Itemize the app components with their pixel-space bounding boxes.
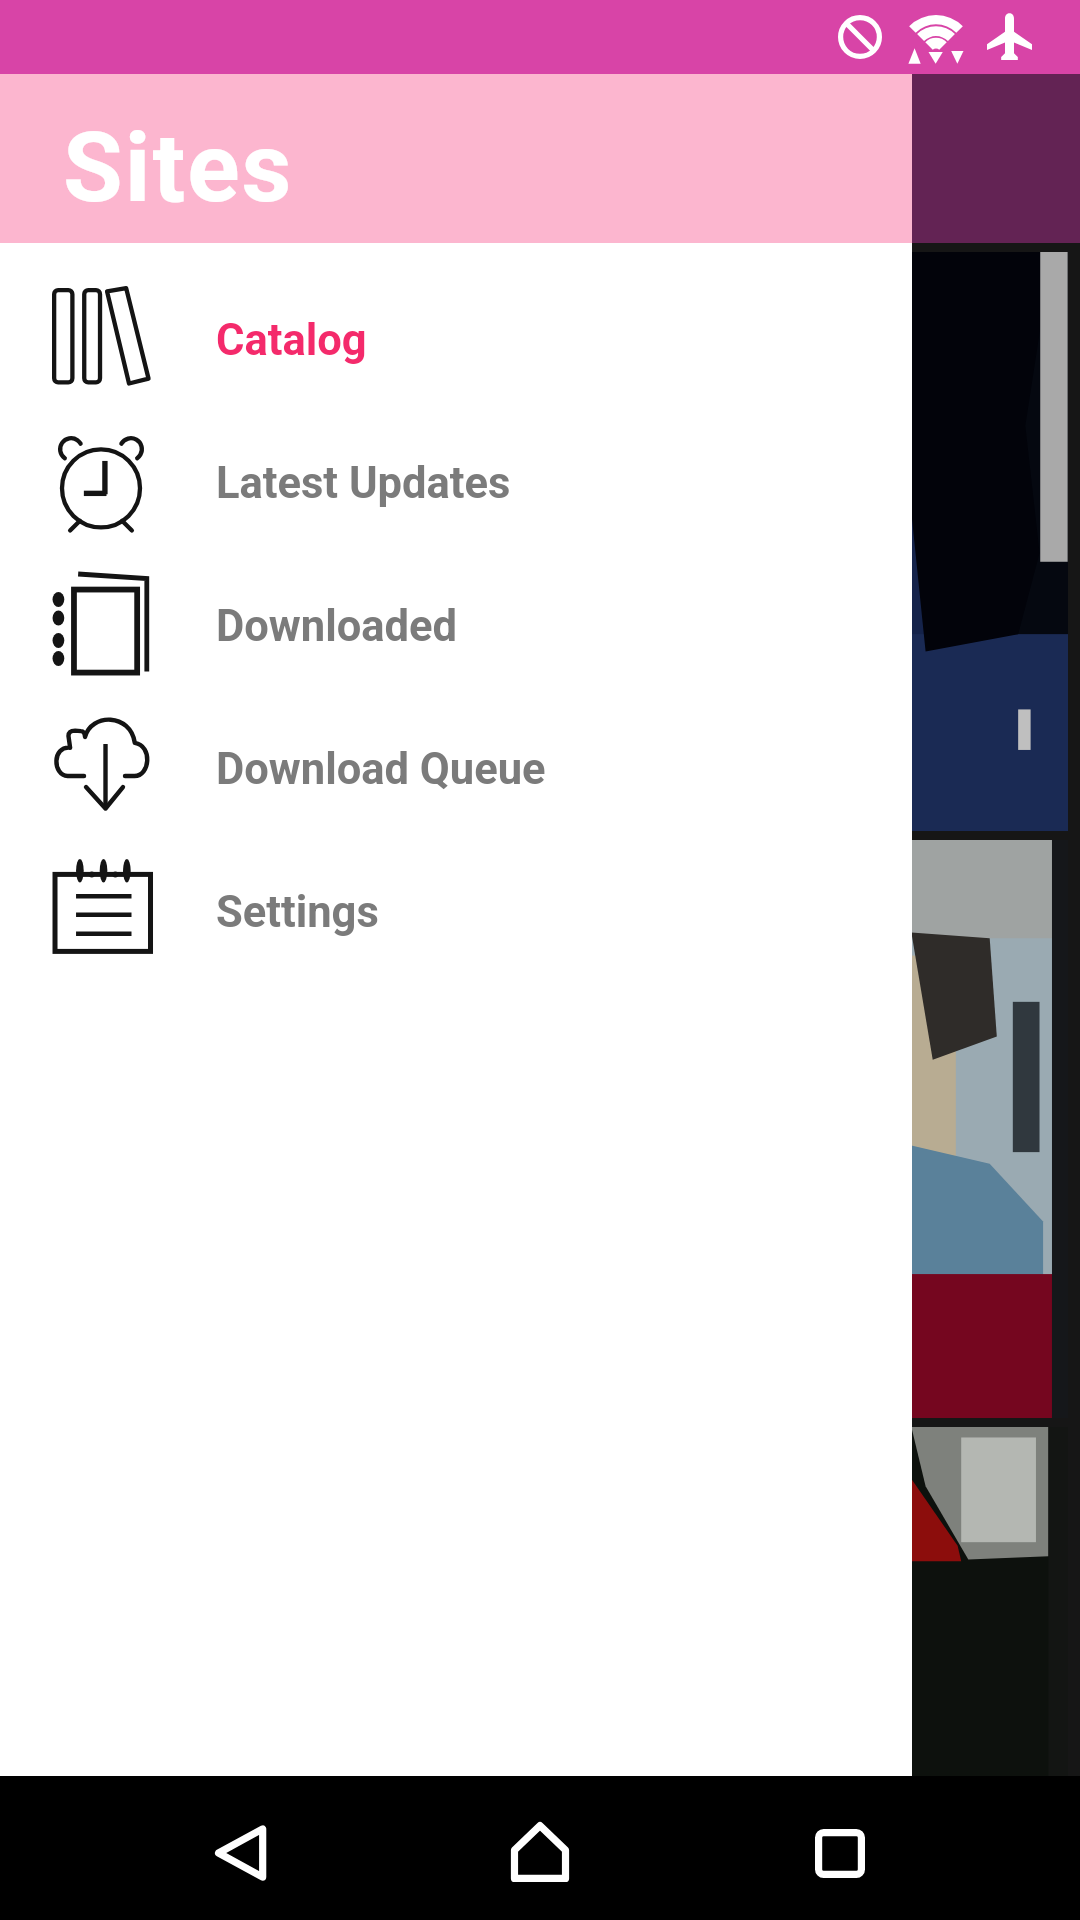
button[interactable]: Back <box>150 1776 330 1920</box>
other: Airplane mode <box>987 13 1032 60</box>
staticText: Sites <box>63 111 294 225</box>
other: Wi-Fi <box>906 15 966 65</box>
staticText: Download Queue <box>216 744 546 795</box>
button[interactable]: Recent apps <box>750 1776 930 1920</box>
button[interactable]: Settings <box>0 836 912 979</box>
button[interactable]: Catalog <box>0 264 912 407</box>
staticText: Downloaded <box>216 601 457 652</box>
button[interactable]: Downloaded <box>0 550 912 693</box>
staticText: Catalog <box>216 315 367 366</box>
staticText: Settings <box>216 887 379 938</box>
button[interactable]: Home <box>450 1776 630 1920</box>
button[interactable]: Latest Updates <box>0 407 912 550</box>
button[interactable]: Download Queue <box>0 693 912 836</box>
other: Do not disturb <box>838 15 882 59</box>
staticText: Latest Updates <box>216 458 511 509</box>
